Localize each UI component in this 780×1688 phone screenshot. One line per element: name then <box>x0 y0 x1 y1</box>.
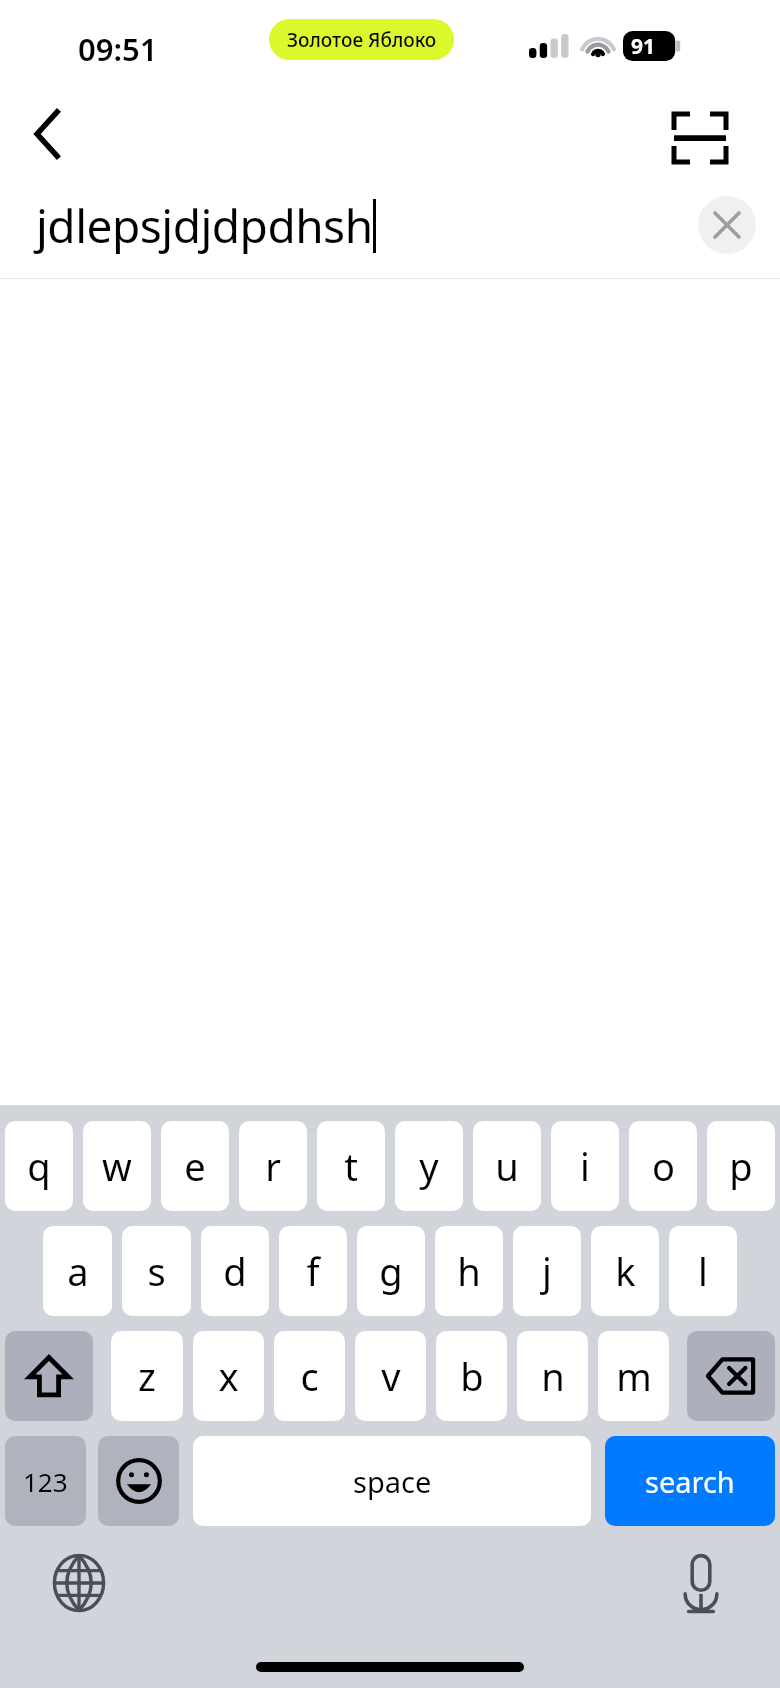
staticText: k <box>615 1245 636 1297</box>
button[interactable]: w <box>83 1121 151 1211</box>
staticText: v <box>381 1350 401 1402</box>
button[interactable]: s <box>122 1226 191 1316</box>
button[interactable]: Scan barcode <box>662 100 738 176</box>
button[interactable]: f <box>279 1226 347 1316</box>
button[interactable]: Back <box>14 100 82 168</box>
staticText: w <box>102 1140 132 1192</box>
staticText: t <box>344 1140 358 1192</box>
staticText: c <box>300 1350 319 1402</box>
staticText: s <box>147 1245 166 1297</box>
staticText: 91 <box>631 32 656 61</box>
staticText: e <box>184 1140 206 1192</box>
staticText: space <box>353 1462 432 1501</box>
staticText: search <box>645 1462 735 1501</box>
staticText: r <box>265 1140 281 1192</box>
button[interactable]: y <box>395 1121 463 1211</box>
button[interactable]: x <box>193 1331 264 1421</box>
staticText: b <box>460 1350 484 1402</box>
button[interactable]: n <box>517 1331 588 1421</box>
staticText: y <box>419 1140 439 1192</box>
staticText: 09:51 <box>78 28 158 70</box>
button[interactable]: 123 <box>5 1436 86 1526</box>
button[interactable]: g <box>357 1226 425 1316</box>
staticText: q <box>27 1140 51 1192</box>
button[interactable]: q <box>5 1121 73 1211</box>
staticText: h <box>457 1245 481 1297</box>
button[interactable]: Shift <box>5 1331 93 1421</box>
button[interactable]: space <box>193 1436 591 1526</box>
button[interactable]: u <box>473 1121 541 1211</box>
staticText: d <box>223 1245 247 1297</box>
button[interactable]: k <box>591 1226 659 1316</box>
button[interactable]: e <box>161 1121 229 1211</box>
button[interactable]: v <box>355 1331 426 1421</box>
button[interactable]: search <box>605 1436 775 1526</box>
button[interactable]: z <box>111 1331 183 1421</box>
button[interactable]: a <box>43 1226 112 1316</box>
button[interactable]: b <box>436 1331 507 1421</box>
button[interactable]: j <box>513 1226 581 1316</box>
staticText: jdlepsjdjdpdhsh <box>36 194 373 257</box>
staticText: x <box>218 1350 239 1402</box>
button[interactable]: o <box>629 1121 697 1211</box>
staticText: o <box>652 1140 675 1192</box>
button[interactable]: Emoji <box>98 1436 179 1526</box>
staticText: j <box>542 1245 552 1297</box>
button[interactable]: l <box>669 1226 737 1316</box>
staticText: u <box>495 1140 519 1192</box>
button[interactable]: Dictate <box>662 1544 740 1622</box>
staticText: z <box>138 1350 156 1402</box>
button[interactable]: h <box>435 1226 503 1316</box>
staticText: a <box>67 1245 89 1297</box>
staticText: i <box>580 1140 590 1192</box>
button[interactable]: i <box>551 1121 619 1211</box>
staticText: p <box>729 1140 753 1192</box>
button[interactable]: c <box>274 1331 345 1421</box>
button[interactable]: Change keyboard language <box>40 1544 118 1622</box>
staticText: Золотое Яблоко <box>287 27 437 53</box>
button[interactable]: t <box>317 1121 385 1211</box>
button[interactable]: m <box>598 1331 669 1421</box>
staticText: n <box>541 1350 565 1402</box>
button[interactable]: Clear text <box>698 196 756 254</box>
button[interactable]: Backspace <box>687 1331 775 1421</box>
button[interactable]: d <box>201 1226 269 1316</box>
staticText: g <box>379 1245 403 1297</box>
button[interactable]: p <box>707 1121 775 1211</box>
staticText: f <box>306 1245 320 1297</box>
staticText: m <box>616 1350 652 1402</box>
staticText: 123 <box>23 1464 68 1499</box>
staticText: l <box>698 1245 708 1297</box>
button[interactable]: r <box>239 1121 307 1211</box>
